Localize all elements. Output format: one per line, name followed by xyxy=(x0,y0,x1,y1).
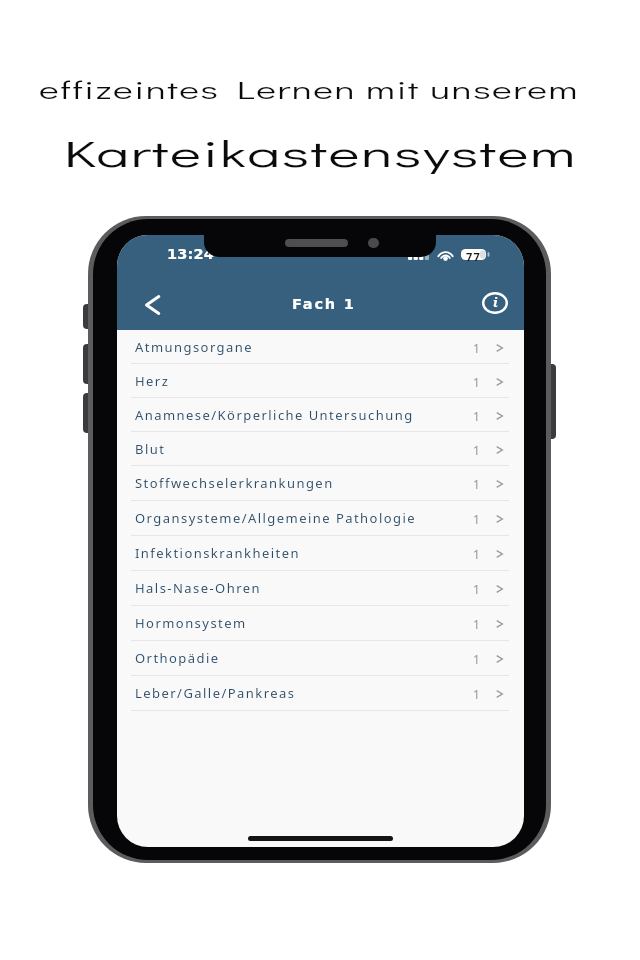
button[interactable]: Hals-Nase-Ohren xyxy=(117,571,524,606)
staticText: effizeintes Lernen mit unserem xyxy=(39,74,579,105)
staticText: 1 xyxy=(473,408,480,424)
staticText: Leber/Galle/Pankreas xyxy=(135,684,296,702)
staticText: Herz xyxy=(135,372,170,390)
staticText: Organsysteme/Allgemeine Pathologie xyxy=(135,509,417,527)
button[interactable]: Back xyxy=(117,275,181,330)
staticText: i xyxy=(493,293,498,311)
staticText: 1 xyxy=(473,374,480,390)
staticText: 1 xyxy=(473,476,480,492)
button[interactable]: Blut xyxy=(117,432,524,466)
staticText: Stoffwechselerkrankungen xyxy=(135,474,334,492)
staticText: Hormonsystem xyxy=(135,614,247,632)
staticText: 1 xyxy=(473,546,480,562)
staticText: Anamnese/Körperliche Untersuchung xyxy=(135,406,414,424)
staticText: 1 xyxy=(473,581,480,597)
staticText: 13:24 xyxy=(167,246,215,263)
button[interactable]: Infektionskrankheiten xyxy=(117,536,524,571)
button[interactable]: Hormonsystem xyxy=(117,606,524,641)
staticText: 1 xyxy=(473,340,480,356)
staticText: 1 xyxy=(473,651,480,667)
staticText: 1 xyxy=(473,442,480,458)
button[interactable]: Organsysteme/Allgemeine Pathologie xyxy=(117,501,524,536)
staticText: Karteikastensystem xyxy=(64,128,577,177)
staticText: 77 xyxy=(466,249,482,264)
staticText: 1 xyxy=(473,686,480,702)
staticText: Orthopädie xyxy=(135,649,220,667)
button[interactable]: Herz xyxy=(117,364,524,398)
staticText: Fach 1 xyxy=(292,296,356,313)
button[interactable]: Info xyxy=(466,275,524,330)
staticText: 1 xyxy=(473,511,480,527)
button[interactable]: Atmungsorgane xyxy=(117,330,524,364)
button[interactable]: Anamnese/Körperliche Untersuchung xyxy=(117,398,524,432)
button[interactable]: Orthopädie xyxy=(117,641,524,676)
button[interactable]: Leber/Galle/Pankreas xyxy=(117,676,524,711)
staticText: Blut xyxy=(135,440,166,458)
staticText: Infektionskrankheiten xyxy=(135,544,300,562)
staticText: 1 xyxy=(473,616,480,632)
button[interactable]: Stoffwechselerkrankungen xyxy=(117,466,524,501)
staticText: Atmungsorgane xyxy=(135,338,254,356)
staticText: Hals-Nase-Ohren xyxy=(135,579,262,597)
